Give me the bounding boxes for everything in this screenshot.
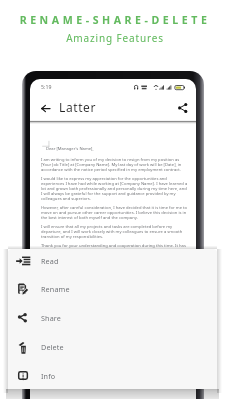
staticText: I would like to express my appreciation … bbox=[41, 176, 189, 201]
staticText: Dear [Manager's Name], bbox=[46, 146, 94, 152]
button[interactable]: Back bbox=[35, 100, 56, 117]
button[interactable]: Share bbox=[168, 100, 189, 117]
staticText: Share bbox=[41, 313, 62, 323]
staticText: Delete bbox=[41, 342, 64, 352]
staticText: Info bbox=[41, 371, 56, 381]
button[interactable]: Delete bbox=[8, 332, 217, 361]
staticText: Read bbox=[41, 256, 59, 266]
staticText: RENAME-SHARE-DELETE bbox=[2, 13, 226, 27]
button[interactable]: Read bbox=[8, 249, 217, 275]
staticText: I am writing to inform you of my decisio… bbox=[41, 157, 189, 172]
staticText: Rename bbox=[41, 284, 70, 294]
staticText: 5:19 bbox=[41, 83, 52, 90]
staticText: However, after careful consideration, I … bbox=[41, 205, 189, 220]
button[interactable]: Info bbox=[8, 361, 217, 389]
staticText: Latter bbox=[59, 99, 97, 115]
staticText: I will ensure that all my projects and t… bbox=[41, 224, 189, 239]
button[interactable]: Rename bbox=[8, 274, 217, 303]
staticText: Amazing Features bbox=[2, 31, 226, 45]
button[interactable]: Share bbox=[8, 303, 217, 332]
staticText: Thank you for your understanding and coo… bbox=[41, 243, 189, 253]
